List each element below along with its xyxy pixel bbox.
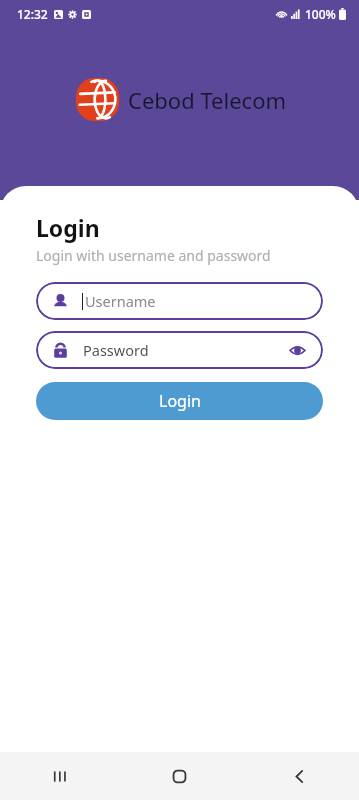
staticText: Username (85, 291, 156, 311)
staticText: Login (36, 212, 100, 243)
staticText: Password (83, 340, 149, 360)
staticText: Cebod Telecom (128, 85, 287, 115)
button[interactable]: Password (36, 331, 323, 369)
staticText: Login with username and password (36, 246, 271, 265)
button[interactable]: Login (36, 382, 323, 420)
staticText: 100% (305, 6, 336, 22)
button[interactable]: Home (119, 752, 239, 800)
staticText: Login (159, 390, 201, 412)
button[interactable]: Show password (287, 340, 307, 360)
button[interactable]: Recent apps (0, 752, 119, 800)
button[interactable]: Username (36, 282, 323, 320)
staticText: 12:32 (17, 6, 48, 22)
button[interactable]: Back (239, 752, 359, 800)
